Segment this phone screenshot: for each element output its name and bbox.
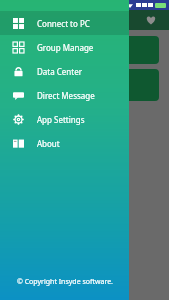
button[interactable]: Connect to PC (0, 11, 129, 35)
button[interactable] (10, 69, 159, 101)
button[interactable]: App Settings (0, 107, 129, 131)
staticText: © Copyright Insyde software. (17, 277, 113, 287)
staticText: Data Center (37, 66, 82, 77)
button[interactable]: About (0, 131, 129, 155)
button[interactable]: Data Center (0, 59, 129, 83)
staticText: App Settings (37, 114, 85, 125)
staticText: Connect to PC (37, 18, 90, 29)
button[interactable]: Favorites (144, 13, 158, 27)
button[interactable]: Group Manage (0, 35, 129, 59)
button[interactable]: Direct Message (0, 83, 129, 107)
staticText: Direct Message (37, 90, 95, 101)
button[interactable] (10, 36, 159, 64)
staticText: Group Manage (37, 42, 94, 53)
staticText: About (37, 138, 60, 149)
